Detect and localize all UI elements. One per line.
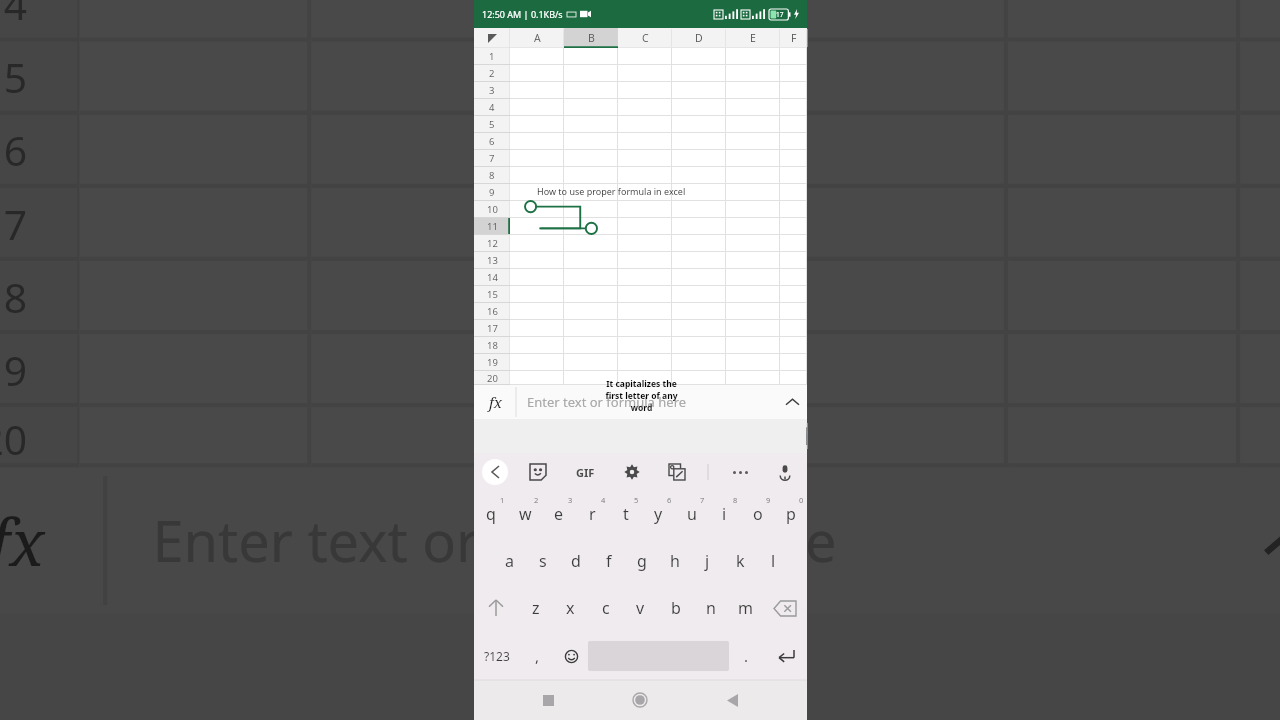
- button[interactable]: [672, 303, 726, 320]
- button[interactable]: 1: [474, 48, 510, 65]
- button[interactable]: [544, 42, 776, 115]
- button[interactable]: Back to suggestions: [482, 459, 508, 485]
- button[interactable]: Collapse formula bar: [777, 385, 807, 419]
- button[interactable]: [726, 65, 780, 82]
- button[interactable]: [672, 48, 726, 65]
- button[interactable]: [510, 201, 564, 218]
- button[interactable]: o: [741, 490, 774, 537]
- button[interactable]: [618, 133, 672, 150]
- button[interactable]: [510, 320, 564, 337]
- button[interactable]: [544, 188, 776, 261]
- button[interactable]: [618, 201, 672, 218]
- button[interactable]: 13: [474, 252, 510, 269]
- button[interactable]: 6: [474, 133, 510, 150]
- button[interactable]: q: [474, 490, 508, 537]
- button[interactable]: i: [708, 490, 741, 537]
- button[interactable]: [780, 82, 807, 99]
- button[interactable]: h: [658, 537, 691, 584]
- button[interactable]: Voice input: [771, 458, 799, 486]
- button[interactable]: [618, 235, 672, 252]
- button[interactable]: [780, 235, 807, 252]
- button[interactable]: C: [618, 28, 672, 48]
- button[interactable]: 16: [0, 115, 79, 188]
- button[interactable]: [618, 286, 672, 303]
- button[interactable]: [618, 354, 672, 371]
- button[interactable]: Collapse formula bar: [1227, 467, 1280, 614]
- button[interactable]: [564, 48, 618, 65]
- button[interactable]: n: [693, 584, 728, 632]
- button[interactable]: [312, 42, 544, 115]
- button[interactable]: e: [542, 490, 576, 537]
- button[interactable]: [544, 407, 776, 467]
- button[interactable]: [780, 286, 807, 303]
- button[interactable]: Emoji: [554, 632, 588, 680]
- button[interactable]: [776, 261, 1008, 334]
- button[interactable]: A: [510, 28, 564, 48]
- button[interactable]: [726, 286, 780, 303]
- button[interactable]: [618, 269, 672, 286]
- button[interactable]: 19: [474, 354, 510, 371]
- button[interactable]: Enter text or formula here: [527, 385, 777, 419]
- button[interactable]: [618, 48, 672, 65]
- button[interactable]: Recent apps: [526, 680, 570, 720]
- button[interactable]: [618, 252, 672, 269]
- button[interactable]: [618, 337, 672, 354]
- button[interactable]: 9: [474, 184, 510, 201]
- button[interactable]: [312, 261, 544, 334]
- button[interactable]: [312, 188, 544, 261]
- button[interactable]: [780, 371, 807, 385]
- button[interactable]: [776, 188, 1008, 261]
- button[interactable]: [780, 150, 807, 167]
- button[interactable]: [510, 150, 564, 167]
- button[interactable]: Stickers: [524, 458, 552, 486]
- button[interactable]: [618, 82, 672, 99]
- button[interactable]: Insert function: [0, 467, 105, 614]
- button[interactable]: [780, 269, 807, 286]
- button[interactable]: [726, 371, 780, 385]
- button[interactable]: [776, 0, 1008, 42]
- button[interactable]: [672, 82, 726, 99]
- button[interactable]: [564, 133, 618, 150]
- button[interactable]: [672, 184, 726, 201]
- button[interactable]: [510, 269, 564, 286]
- button[interactable]: 8: [474, 167, 510, 184]
- button[interactable]: [510, 48, 564, 65]
- button[interactable]: [564, 303, 618, 320]
- button[interactable]: [564, 116, 618, 133]
- button[interactable]: [510, 235, 564, 252]
- button[interactable]: [726, 201, 780, 218]
- button[interactable]: [780, 320, 807, 337]
- button[interactable]: [510, 303, 564, 320]
- button[interactable]: 16: [474, 303, 510, 320]
- button[interactable]: [776, 334, 1008, 407]
- button[interactable]: [776, 407, 1008, 467]
- button[interactable]: Insert function: [474, 385, 516, 419]
- button[interactable]: [672, 201, 726, 218]
- button[interactable]: [780, 65, 807, 82]
- button[interactable]: [544, 0, 776, 42]
- button[interactable]: 17: [0, 188, 79, 261]
- button[interactable]: 15: [474, 286, 510, 303]
- button[interactable]: More options: [726, 458, 754, 486]
- button[interactable]: [672, 150, 726, 167]
- button[interactable]: [544, 334, 776, 407]
- button[interactable]: [780, 303, 807, 320]
- button[interactable]: [776, 115, 1008, 188]
- button[interactable]: [510, 116, 564, 133]
- button[interactable]: [510, 337, 564, 354]
- button[interactable]: [510, 133, 564, 150]
- button[interactable]: [780, 201, 807, 218]
- button[interactable]: [312, 0, 544, 42]
- button[interactable]: 2: [474, 65, 510, 82]
- button[interactable]: [726, 48, 780, 65]
- button[interactable]: [776, 42, 1008, 115]
